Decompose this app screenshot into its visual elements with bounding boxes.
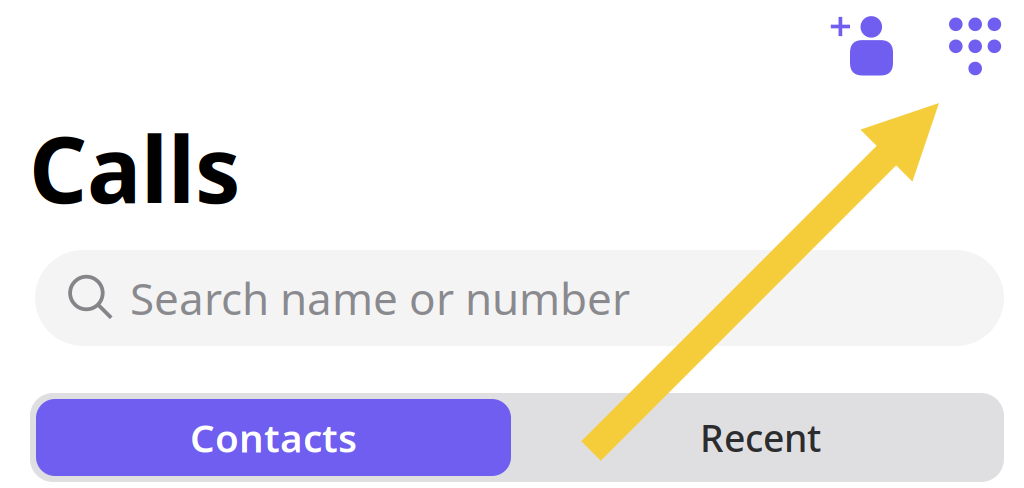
button[interactable]: Add contact: [831, 17, 893, 75]
staticText: Search name or number: [130, 269, 630, 327]
button[interactable]: Recent: [517, 393, 1004, 482]
button[interactable]: Search name or number: [0, 250, 1024, 346]
staticText: Recent: [700, 413, 821, 462]
button[interactable]: Contacts: [30, 393, 517, 482]
staticText: Calls: [29, 108, 241, 228]
staticText: Contacts: [190, 412, 357, 463]
button[interactable]: Keypad: [949, 17, 1001, 75]
